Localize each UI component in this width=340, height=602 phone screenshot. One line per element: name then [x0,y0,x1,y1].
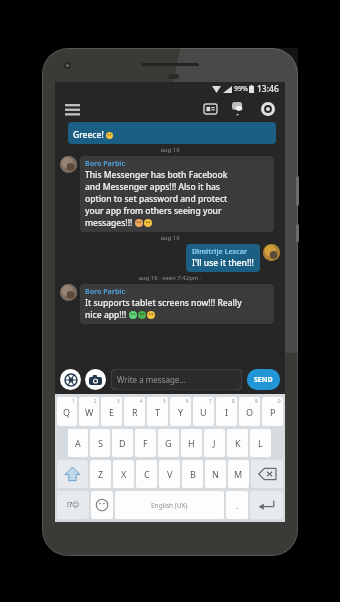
button[interactable]: 9 [239,397,260,426]
staticText: A [75,437,81,449]
staticText: nice app!!! [85,309,127,321]
button[interactable]: 1 [57,397,77,426]
staticText: It supports tablet screens now!!! Really [85,297,242,309]
staticText: C [144,468,150,480]
button[interactable]: Greece! [68,122,276,144]
button[interactable]: Messages [229,99,249,119]
staticText: U [200,406,207,418]
button[interactable]: Emoji [91,491,113,519]
staticText: Q [63,406,71,418]
staticText: 2 [94,398,97,404]
button[interactable]: Profile photo [60,156,77,173]
button[interactable]: Z [90,460,111,488]
button[interactable]: . [226,491,248,519]
staticText: 1 [72,398,75,404]
staticText: N [212,468,219,480]
button[interactable]: H [181,429,202,457]
button[interactable]: Contacts [200,99,220,119]
button[interactable]: 4 [124,397,145,426]
staticText: English (UK) [151,501,188,510]
button[interactable]: SEND [247,369,280,390]
button[interactable]: Boro Parbic [80,156,274,232]
staticText: 13:46 [257,83,279,95]
staticText: aug 16 [160,234,180,242]
staticText: R [132,406,138,418]
staticText: . [236,499,239,511]
staticText: E [109,406,115,418]
button[interactable]: Boro Parbic [80,284,274,324]
button[interactable]: !?☺ [57,491,89,519]
button[interactable]: 3 [101,397,122,426]
button[interactable]: A [68,429,88,457]
staticText: aug 16 [160,146,180,154]
button[interactable]: 0 [262,397,283,426]
staticText: and Messenger apps!!! Also it has [85,181,220,193]
button[interactable]: M [228,460,249,488]
button[interactable]: V [159,460,180,488]
button[interactable]: Backspace [251,460,283,488]
button[interactable]: Write a message... [111,369,242,390]
button[interactable]: English (UK) [115,491,224,519]
button[interactable]: B [182,460,203,488]
button[interactable]: S [90,429,110,457]
staticText: H [188,437,195,449]
staticText: Dimitrije Lescar [192,247,248,257]
button[interactable]: D [112,429,133,457]
button[interactable]: Settings [258,99,278,119]
button[interactable]: Dimitrije Lescar [186,244,260,272]
button[interactable]: 6 [170,397,191,426]
staticText: M [234,468,243,480]
button[interactable]: Profile photo [263,244,280,261]
staticText: messages!!! [85,217,133,229]
staticText: S [98,437,103,449]
staticText: 7 [209,398,212,404]
button[interactable]: L [250,429,271,457]
staticText: K [235,437,241,449]
button[interactable]: G [158,429,179,457]
button[interactable]: Enter [250,491,283,519]
button[interactable]: Camera [85,369,106,390]
button[interactable]: Profile photo [60,284,77,301]
staticText: X [121,468,127,480]
staticText: Boro Parbic [85,159,126,169]
staticText: B [190,468,196,480]
staticText: 9 [255,398,258,404]
staticText: T [155,406,161,418]
staticText: Y [178,406,184,418]
button[interactable]: 5 [147,397,168,426]
staticText: W [85,406,94,418]
staticText: 4 [140,398,143,404]
staticText: I'll use it then!!! [192,257,254,269]
button[interactable]: K [227,429,248,457]
staticText: 5 [163,398,166,404]
staticText: 99% [234,84,248,94]
button[interactable]: 8 [216,397,237,426]
staticText: O [246,406,254,418]
staticText: Boro Parbic [85,287,126,297]
staticText: Write a message... [117,374,186,385]
staticText: L [258,437,263,449]
button[interactable]: F [135,429,156,457]
staticText: option to set password and protect [85,193,228,205]
button[interactable]: 2 [79,397,99,426]
button[interactable]: C [136,460,157,488]
staticText: 6 [186,398,189,404]
staticText: This Messenger has both Facebook [85,169,228,181]
button[interactable]: Shift [57,460,88,488]
staticText: !?☺ [67,500,80,510]
staticText: D [119,437,126,449]
button[interactable]: Stickers [60,369,81,390]
staticText: G [165,437,172,449]
button[interactable]: N [205,460,226,488]
staticText: Z [98,468,104,480]
button[interactable]: X [113,460,134,488]
button[interactable]: Menu [62,99,82,119]
button[interactable]: 7 [193,397,214,426]
staticText: I [225,406,229,418]
staticText: Greece! [73,129,104,141]
staticText: 8 [232,398,235,404]
staticText: SEND [254,375,273,385]
button[interactable]: J [204,429,225,457]
staticText: F [143,437,148,449]
staticText: P [270,406,276,418]
